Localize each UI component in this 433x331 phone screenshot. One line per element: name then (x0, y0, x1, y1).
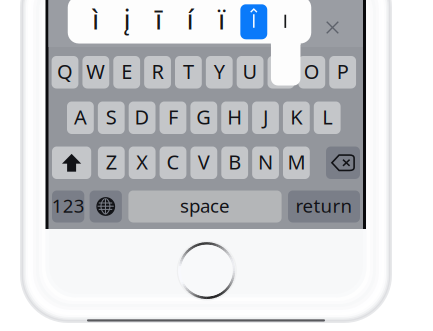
button[interactable]: 123 (52, 190, 84, 222)
staticText: H (227, 103, 242, 130)
button[interactable]: X (129, 146, 156, 179)
button[interactable]: V (190, 146, 217, 179)
staticText: V (198, 148, 210, 175)
staticText: E (121, 58, 132, 85)
button[interactable]: P (329, 56, 356, 88)
staticText: Z (106, 148, 117, 175)
button[interactable]: Q (52, 56, 78, 88)
button[interactable]: Y (206, 56, 233, 88)
button[interactable]: Shift (52, 146, 91, 179)
button[interactable]: E (113, 56, 140, 88)
staticText: C (166, 148, 179, 175)
staticText: T (183, 58, 194, 85)
button[interactable]: Next keyboard (90, 190, 122, 222)
button[interactable]: Dismiss keyboard (316, 11, 348, 43)
staticText: P (337, 58, 349, 85)
staticText: J (263, 103, 268, 130)
button[interactable]: W (82, 56, 109, 88)
staticText: í (186, 0, 193, 37)
staticText: ì (92, 0, 99, 37)
staticText: X (136, 148, 148, 175)
button[interactable]: I (268, 56, 294, 88)
button[interactable]: B (221, 146, 248, 179)
button[interactable]: O (298, 56, 325, 88)
staticText: Q (57, 58, 73, 85)
button[interactable]: T (175, 56, 202, 88)
button[interactable]: R (144, 56, 171, 88)
button[interactable]: Delete (326, 146, 360, 179)
button[interactable]: D (129, 101, 155, 134)
staticText: ï (218, 0, 225, 37)
button[interactable]: L (314, 101, 341, 134)
staticText: ī (155, 0, 162, 37)
button[interactable]: Z (98, 146, 125, 179)
button[interactable]: C (160, 146, 186, 179)
button[interactable]: J (252, 101, 279, 134)
button[interactable]: M (283, 146, 310, 179)
button[interactable]: U (237, 56, 263, 88)
staticText: A (74, 103, 87, 130)
staticText: Y (214, 58, 225, 85)
staticText: L (322, 103, 332, 130)
staticText: G (196, 103, 211, 130)
staticText: K (290, 103, 302, 130)
button[interactable]: A (67, 101, 94, 134)
button[interactable]: F (160, 101, 186, 134)
staticText: F (168, 103, 178, 130)
staticText: U (243, 58, 258, 85)
staticText: N (258, 148, 273, 175)
staticText: O (304, 58, 320, 85)
button[interactable]: space (128, 190, 282, 222)
button[interactable]: return (288, 190, 360, 222)
staticText: į (123, 0, 130, 37)
button[interactable]: H (221, 101, 248, 134)
staticText: S (106, 103, 117, 130)
button[interactable]: S (98, 101, 125, 134)
staticText: D (135, 103, 150, 130)
staticText: W (86, 58, 105, 85)
staticText: return (295, 193, 352, 218)
staticText: M (287, 148, 305, 175)
button[interactable]: N (252, 146, 279, 179)
staticText: R (152, 58, 164, 85)
staticText: B (228, 148, 241, 175)
button[interactable]: K (283, 101, 310, 134)
staticText: 123 (52, 193, 85, 218)
button[interactable]: G (190, 101, 217, 134)
staticText: space (180, 193, 230, 218)
